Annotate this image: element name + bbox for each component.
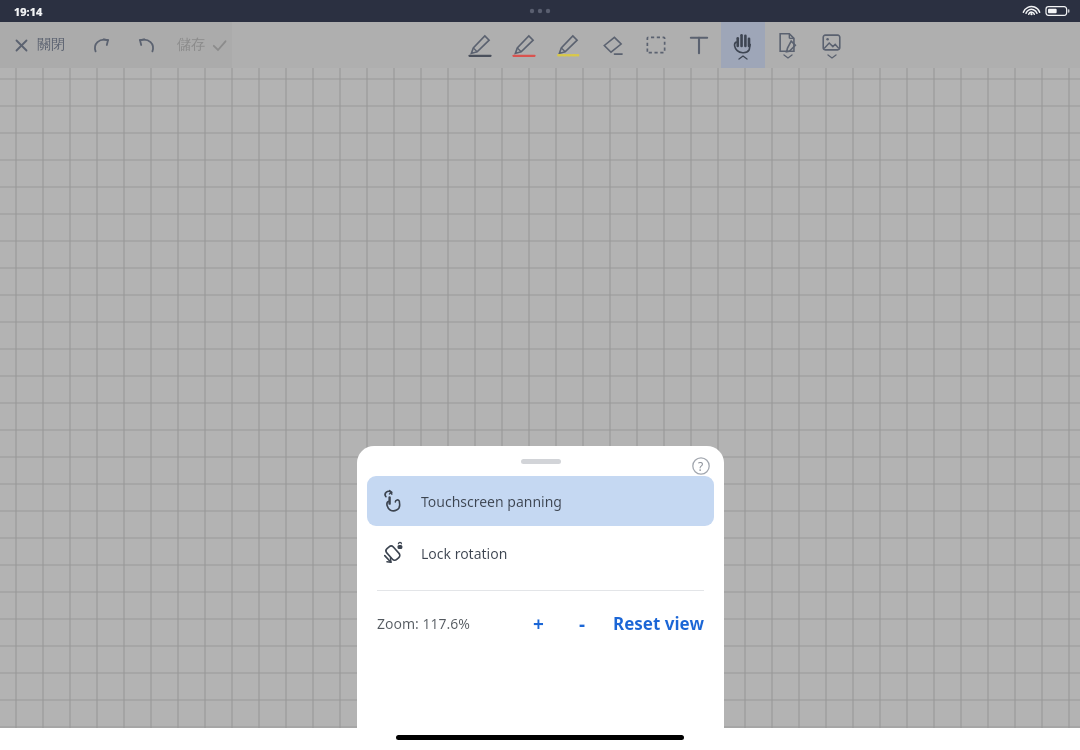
staticText: 關閉 (37, 36, 65, 54)
staticText: Lock rotation (421, 544, 508, 563)
staticText: - (579, 611, 586, 637)
button[interactable]: Zoom in (521, 607, 555, 641)
button[interactable]: Pen (459, 22, 501, 68)
button[interactable]: Redo (85, 28, 119, 62)
staticText: Zoom: 117.6% (377, 614, 470, 633)
staticText: 19:14 (14, 4, 43, 19)
button[interactable]: Image (810, 22, 852, 68)
staticText: Touchscreen panning (421, 492, 562, 511)
button[interactable]: Page (766, 22, 808, 68)
button[interactable]: 關閉 (8, 30, 71, 60)
staticText: ? (698, 458, 704, 474)
button[interactable]: Reset view (609, 606, 708, 641)
button[interactable]: Zoom out (567, 609, 597, 639)
button[interactable]: Highlighter (547, 22, 589, 68)
button[interactable]: Help (686, 451, 716, 481)
button[interactable]: Text (678, 22, 720, 68)
button[interactable]: 儲存 (173, 30, 231, 60)
button[interactable]: Lock rotation (367, 529, 714, 577)
button[interactable]: Pan (721, 22, 765, 68)
button[interactable]: Pen red (503, 22, 545, 68)
button[interactable]: Eraser (591, 22, 633, 68)
staticText: + (533, 611, 544, 637)
button[interactable]: Undo (129, 28, 163, 62)
staticText: 儲存 (177, 36, 205, 54)
button[interactable]: Select (635, 22, 677, 68)
button[interactable]: Touchscreen panning (367, 476, 714, 526)
staticText: Reset view (613, 612, 704, 635)
